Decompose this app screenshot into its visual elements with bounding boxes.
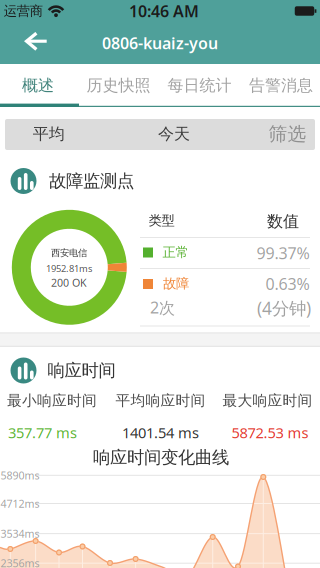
- staticText: 2356ms: [0, 556, 39, 568]
- staticText: 类型: [148, 212, 174, 229]
- button[interactable]: 概述: [0, 64, 76, 106]
- button[interactable]: 今天: [143, 118, 205, 149]
- staticText: 5890ms: [0, 468, 39, 482]
- staticText: 运营商: [4, 3, 43, 19]
- staticText: 响应时间变化曲线: [93, 447, 229, 468]
- staticText: 5872.53 ms: [231, 423, 308, 442]
- button[interactable]: 筛选: [256, 118, 318, 149]
- button[interactable]: Back: [13, 26, 57, 56]
- staticText: 最小响应时间: [7, 391, 97, 409]
- staticText: 故障: [163, 275, 189, 292]
- button[interactable]: 平均: [18, 118, 80, 149]
- staticText: 1952.81ms: [46, 262, 92, 275]
- staticText: 0806-kuaiz-you: [102, 32, 218, 54]
- button[interactable]: 每日统计: [161, 64, 237, 106]
- staticText: 告警消息: [249, 76, 313, 95]
- staticText: 筛选: [268, 122, 306, 145]
- staticText: 故障监测点: [49, 170, 134, 192]
- staticText: 概述: [22, 76, 54, 95]
- staticText: 99.37%: [256, 242, 309, 264]
- staticText: 平均: [33, 124, 65, 144]
- staticText: 每日统计: [167, 76, 231, 95]
- staticText: 200 OK: [51, 275, 87, 290]
- staticText: 西安电信: [51, 247, 87, 259]
- staticText: 3534ms: [0, 526, 39, 541]
- staticText: 历史快照: [86, 76, 150, 95]
- button[interactable]: 历史快照: [80, 64, 156, 106]
- staticText: 0.63%: [265, 273, 309, 294]
- staticText: (4分钟): [257, 296, 311, 319]
- staticText: 2次: [150, 297, 175, 318]
- staticText: 1401.54 ms: [122, 423, 199, 442]
- staticText: 数值: [267, 212, 299, 231]
- staticText: 今天: [158, 124, 190, 144]
- staticText: 响应时间: [47, 360, 115, 381]
- button[interactable]: 告警消息: [243, 64, 319, 106]
- staticText: 10:46 AM: [129, 0, 199, 22]
- staticText: 正常: [162, 244, 188, 260]
- staticText: 平均响应时间: [115, 391, 205, 409]
- staticText: 357.77 ms: [8, 423, 77, 442]
- staticText: 最大响应时间: [222, 391, 312, 409]
- staticText: 4712ms: [0, 496, 39, 511]
